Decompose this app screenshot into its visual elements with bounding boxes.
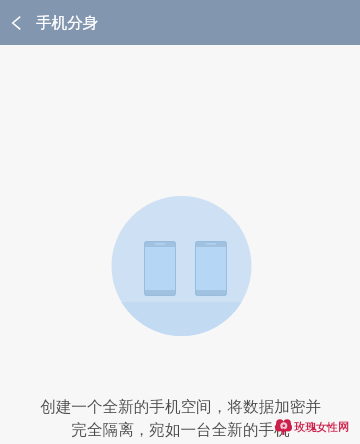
button[interactable]: Back — [0, 0, 32, 45]
staticText: 手机分身 — [36, 13, 99, 33]
staticText: 玫瑰女性网 — [294, 420, 349, 434]
staticText: 创建一个全新的手机空间，将数据加密并 完全隔离，宛如一台全新的手机 — [40, 397, 321, 440]
button[interactable]: 玫瑰女性网 — [276, 418, 349, 435]
